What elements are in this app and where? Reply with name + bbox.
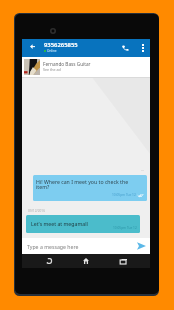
button[interactable]: Fernando Bass Guitar xyxy=(22,57,150,78)
button[interactable]: More options xyxy=(137,39,149,57)
staticText: 10:05pm Tue 12 xyxy=(112,193,136,197)
button[interactable]: Send xyxy=(132,238,150,254)
button[interactable]: Recent apps xyxy=(116,254,130,268)
button[interactable]: Back xyxy=(22,39,150,57)
staticText: Type a message here xyxy=(27,243,79,250)
button[interactable]: Home xyxy=(79,254,93,268)
staticText: 10:05pm Tue 12 xyxy=(113,226,137,230)
staticText: 09/12/2016 xyxy=(28,209,45,213)
button[interactable]: Let's meet at megamall xyxy=(26,215,140,233)
staticText: Fernando Bass Guitar xyxy=(43,61,91,67)
staticText: Hi! Where can I meet you to check the it… xyxy=(36,178,134,191)
button[interactable]: Call xyxy=(118,39,132,57)
button[interactable]: Back xyxy=(42,254,56,268)
button[interactable]: Hi! Where can I meet you to check the it… xyxy=(33,175,147,201)
staticText: Let's meet at megamall xyxy=(31,220,88,227)
button[interactable]: Back xyxy=(25,38,39,55)
staticText: Online xyxy=(47,49,57,53)
staticText: See the ad xyxy=(43,67,61,72)
staticText: ... xyxy=(141,167,144,172)
staticText: 9356265855 xyxy=(44,41,78,49)
